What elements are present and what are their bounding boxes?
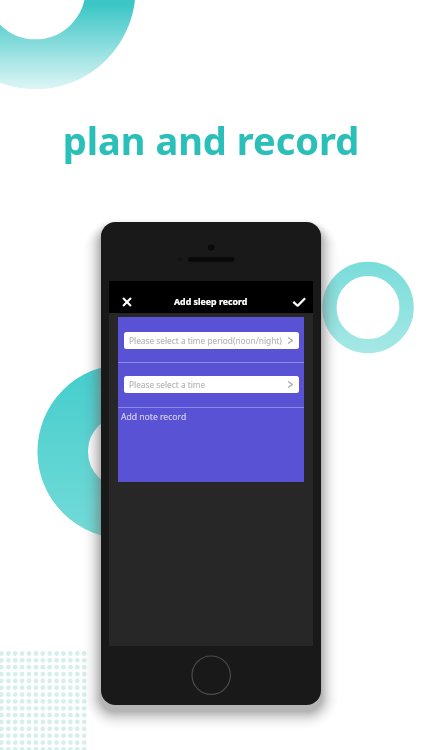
button[interactable]: Please select a time period(noon/night)	[124, 332, 299, 349]
button[interactable]: Close	[119, 294, 135, 310]
staticText: Please select a time	[129, 379, 206, 390]
staticText: Please select a time period(noon/night)	[129, 335, 282, 346]
staticText: plan and record	[0, 114, 422, 166]
staticText: Add note record	[121, 411, 187, 423]
button[interactable]: Please select a time	[124, 376, 299, 393]
staticText: Add sleep record	[174, 296, 248, 308]
button[interactable]: Confirm	[292, 294, 308, 310]
